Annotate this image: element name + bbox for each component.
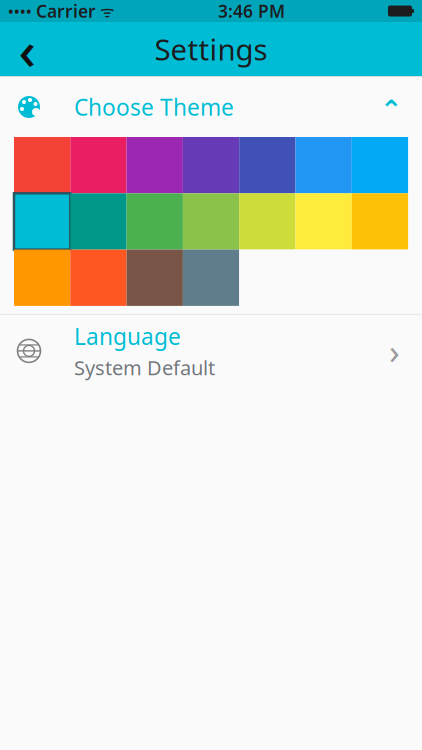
button[interactable]: Theme colour [295, 193, 352, 250]
button[interactable]: Theme colour [70, 137, 127, 193]
button[interactable]: Theme colour [183, 193, 239, 250]
staticText: ⌃ [380, 95, 402, 125]
staticText: Language [74, 321, 181, 351]
button[interactable]: Theme colour [14, 193, 70, 250]
staticText: ᯤ [96, 0, 115, 22]
button[interactable]: Back [0, 22, 54, 76]
button[interactable]: Theme colour [70, 193, 127, 250]
button[interactable]: Theme colour [127, 193, 183, 250]
staticText: •••• [8, 1, 36, 21]
staticText: ‹ [18, 14, 35, 84]
button[interactable]: Theme colour [239, 137, 295, 193]
button[interactable]: Language [0, 315, 422, 387]
staticText: System Default [74, 354, 215, 381]
button[interactable]: Theme colour [127, 250, 183, 306]
button[interactable]: Theme colour [295, 137, 352, 193]
button[interactable]: Theme colour [14, 137, 70, 193]
staticText: Choose Theme [74, 92, 234, 122]
staticText: Settings [154, 29, 267, 68]
button[interactable]: Choose Theme [0, 77, 422, 137]
staticText: Carrier [36, 0, 96, 22]
button[interactable]: Theme colour [14, 250, 70, 306]
staticText: 3:46 PM [218, 0, 285, 22]
staticText: › [389, 328, 400, 374]
button[interactable]: Theme colour [70, 250, 127, 306]
button[interactable]: Theme colour [239, 193, 295, 250]
button[interactable]: Theme colour [352, 193, 408, 250]
